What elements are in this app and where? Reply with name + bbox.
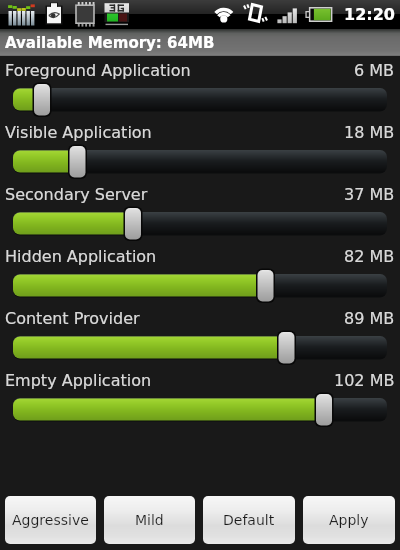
staticText: Foreground Application xyxy=(5,61,191,80)
staticText: 89 MB xyxy=(344,309,395,328)
staticText: Mild xyxy=(135,512,164,528)
button[interactable]: Hidden Application xyxy=(0,243,400,305)
staticText: Empty Application xyxy=(5,371,152,390)
button[interactable]: Empty Application xyxy=(0,367,400,429)
staticText: Apply xyxy=(329,512,369,528)
staticText: 37 MB xyxy=(344,185,395,204)
staticText: Content Provider xyxy=(5,309,140,328)
button[interactable]: Secondary Server xyxy=(0,181,400,243)
staticText: Visible Application xyxy=(5,123,152,142)
staticText: 18 MB xyxy=(344,123,395,142)
button[interactable]: Aggressive xyxy=(5,496,96,544)
button[interactable]: Mild xyxy=(104,496,195,544)
staticText: Secondary Server xyxy=(5,185,148,204)
button[interactable]: Default xyxy=(203,496,295,544)
button[interactable]: Apply xyxy=(303,496,395,544)
button[interactable]: Content Provider xyxy=(0,305,400,367)
staticText: Available Memory: 64MB xyxy=(5,34,215,51)
staticText: 12:20 xyxy=(344,5,395,24)
staticText: Default xyxy=(223,512,275,528)
staticText: Hidden Application xyxy=(5,247,157,266)
staticText: Aggressive xyxy=(12,512,89,528)
staticText: 82 MB xyxy=(344,247,395,266)
button[interactable]: Visible Application xyxy=(0,119,400,181)
staticText: 102 MB xyxy=(334,371,395,390)
staticText: 6 MB xyxy=(354,61,395,80)
button[interactable]: Foreground Application xyxy=(0,57,400,119)
